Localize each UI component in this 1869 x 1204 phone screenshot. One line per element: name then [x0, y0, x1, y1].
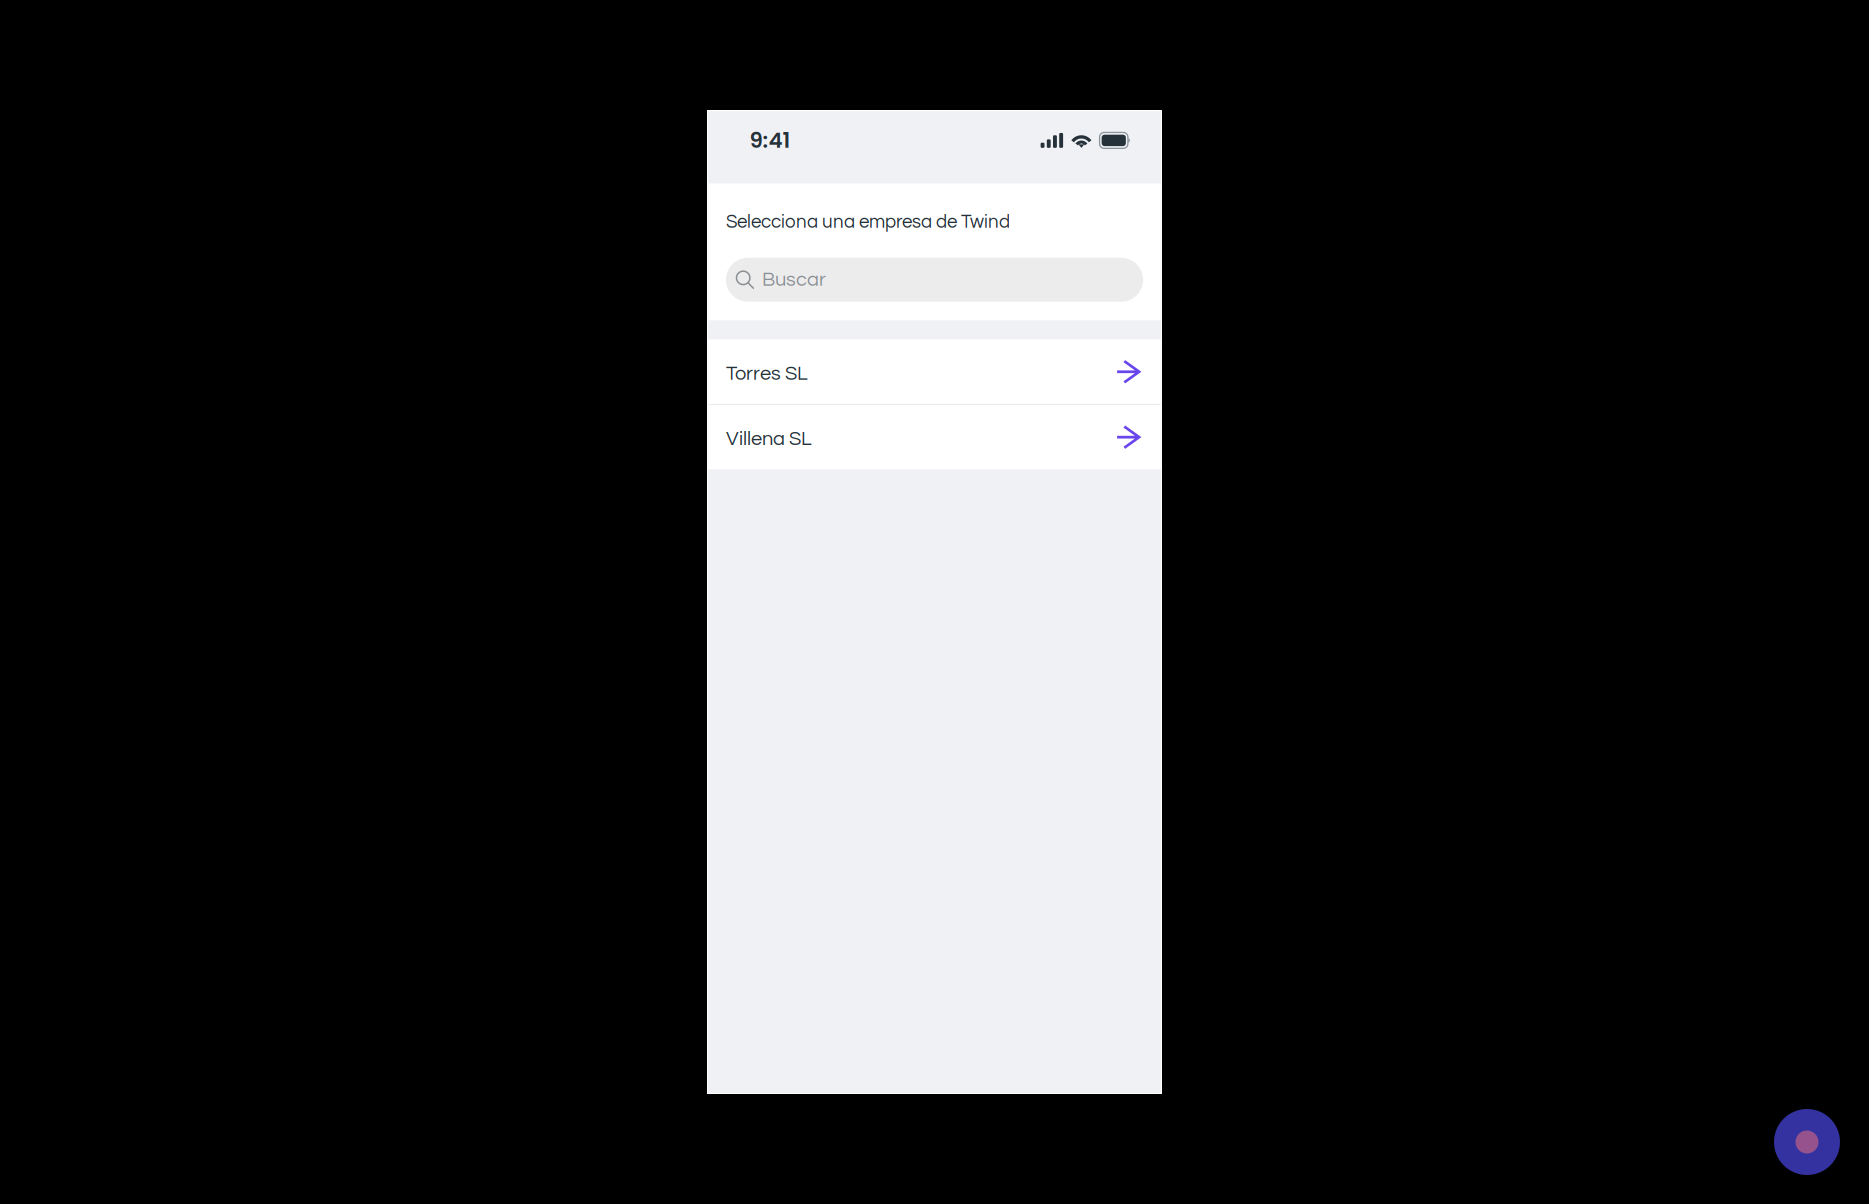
button[interactable]: Buscar [726, 258, 1143, 302]
staticText: 9:41 [749, 125, 790, 155]
staticText: Selecciona una empresa de Twind [726, 212, 1010, 232]
staticText: Torres SL [726, 363, 808, 384]
button[interactable]: Torres SL [708, 339, 1161, 404]
staticText: Villena SL [726, 429, 812, 449]
button[interactable]: Villena SL [708, 405, 1161, 469]
staticText: Buscar [762, 269, 826, 290]
